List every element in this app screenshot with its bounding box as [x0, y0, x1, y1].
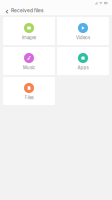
staticText: Music: [23, 65, 35, 70]
staticText: Apps: [77, 65, 88, 70]
staticText: Images: [22, 35, 36, 40]
button[interactable]: Back: [3, 6, 11, 15]
staticText: Files: [24, 95, 33, 100]
button[interactable]: Apps: [57, 47, 109, 75]
button[interactable]: Videos: [57, 17, 109, 45]
staticText: ‹: [5, 4, 8, 17]
button[interactable]: Images: [3, 17, 55, 45]
button[interactable]: Files: [3, 77, 55, 105]
button[interactable]: Music: [3, 47, 55, 75]
staticText: Videos: [76, 35, 90, 40]
staticText: Received files: [11, 8, 44, 13]
